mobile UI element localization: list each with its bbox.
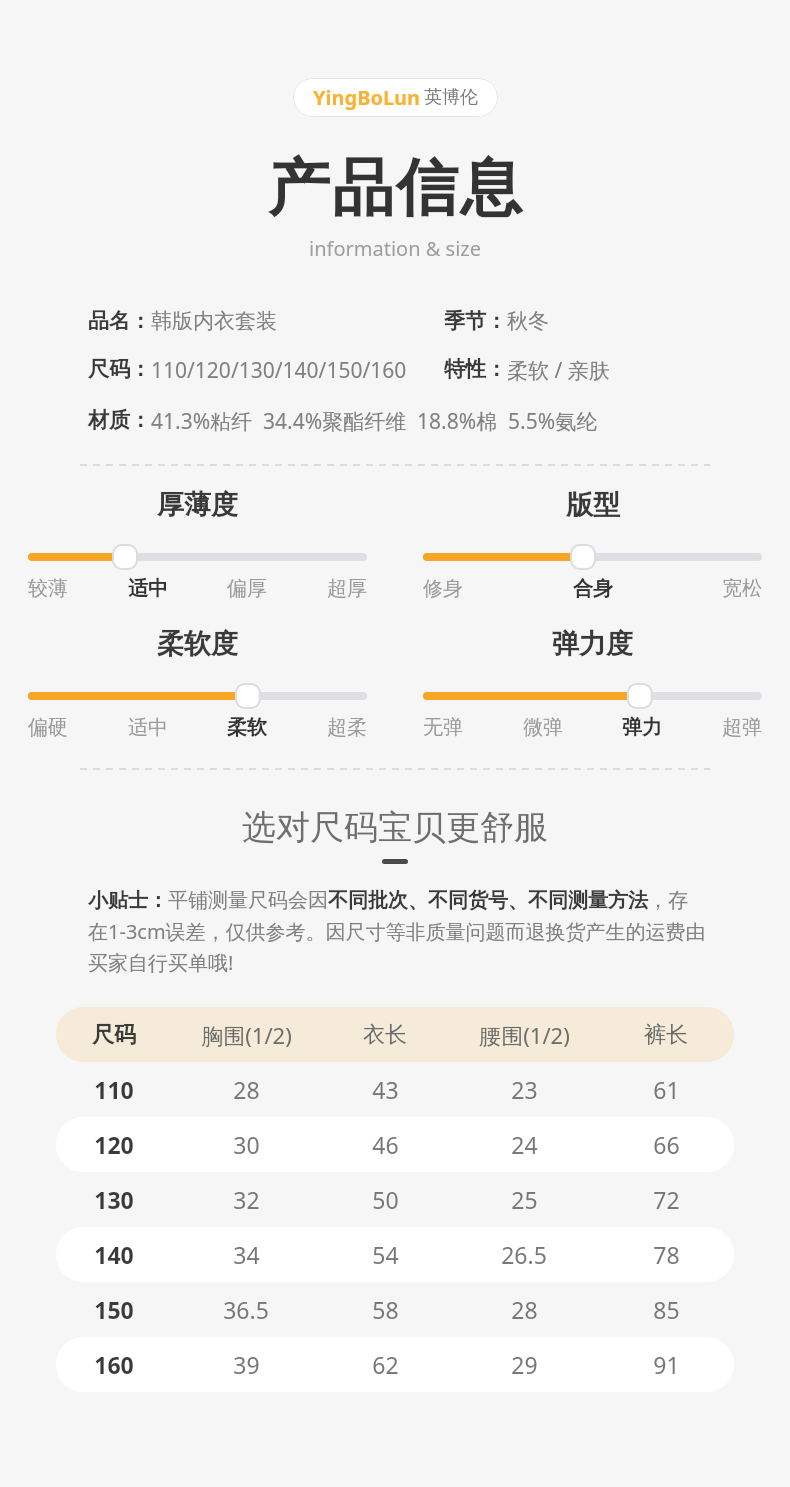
button[interactable]: 150 [56,1282,734,1337]
staticText: 偏硬 [28,715,68,740]
staticText: 54 [372,1239,399,1270]
staticText: 产品信息 [267,149,523,227]
staticText: 130 [94,1184,134,1215]
staticText: 柔软 / 亲肤 [507,356,610,385]
staticText: 韩版内衣套装 [151,308,277,334]
button[interactable]: 120 [56,1117,734,1172]
staticText: 58 [372,1294,399,1325]
staticText: 110 [94,1074,134,1105]
button[interactable]: 160 [56,1337,734,1392]
button[interactable]: 140 [56,1227,734,1282]
staticText: 140 [94,1239,134,1270]
staticText: 弹力 [622,715,662,740]
staticText: 46 [372,1129,399,1160]
staticText: 特性： [444,356,507,382]
staticText: 34 [233,1239,260,1270]
staticText: 超弹 [722,715,762,740]
staticText: 选对尺码宝贝更舒服 [242,806,548,849]
button[interactable]: 柔软度 [28,683,367,709]
staticText: 72 [653,1184,680,1215]
staticText: 120 [94,1129,134,1160]
staticText: 43 [372,1074,399,1105]
staticText: 超厚 [327,576,367,601]
staticText: 适中 [128,715,168,740]
staticText: 26.5 [501,1239,547,1270]
staticText: 小贴士：平铺测量尺码会因不同批次、不同货号、不同测量方法，存在1-3cm误差，仅… [88,888,706,975]
staticText: 24 [511,1129,538,1160]
staticText: 柔软 [227,715,267,740]
staticText: 尺码 [92,1021,136,1049]
staticText: 柔软度 [157,627,238,661]
staticText: 腰围(1/2) [479,1020,570,1050]
staticText: information & size [309,235,481,262]
staticText: 修身 [423,576,463,601]
staticText: 秋冬 [507,308,549,334]
staticText: 弹力度 [552,627,633,661]
staticText: 裤长 [644,1021,688,1049]
button[interactable]: YingBoLun [293,78,498,117]
staticText: 厚薄度 [157,488,238,522]
staticText: 无弹 [423,715,463,740]
staticText: 30 [233,1129,260,1160]
staticText: 材质： [88,407,151,433]
staticText: 78 [653,1239,680,1270]
staticText: 微弹 [523,715,563,740]
staticText: 28 [511,1294,538,1325]
staticText: 英博伦 [424,86,478,109]
staticText: 62 [372,1349,399,1380]
staticText: 150 [94,1294,134,1325]
staticText: 尺码： [88,356,151,382]
staticText: 110/120/130/140/150/160 [151,356,407,385]
button[interactable]: 130 [56,1172,734,1227]
staticText: 28 [233,1074,260,1105]
staticText: 85 [653,1294,680,1325]
staticText: 品名： [88,308,151,334]
staticText: 41.3%粘纤 34.4%聚酯纤维 18.8%棉 5.5%氨纶 [151,407,598,436]
staticText: 25 [511,1184,538,1215]
button[interactable]: 弹力度 [423,683,762,709]
staticText: 衣长 [363,1021,407,1049]
staticText: 61 [653,1074,680,1105]
staticText: 23 [511,1074,538,1105]
staticText: 适中 [128,576,168,601]
staticText: 版型 [566,488,620,522]
staticText: 32 [233,1184,260,1215]
staticText: 偏厚 [227,576,267,601]
staticText: 超柔 [327,715,367,740]
button[interactable]: 版型 [423,544,762,570]
staticText: 宽松 [722,576,762,601]
button[interactable]: 110 [56,1062,734,1117]
staticText: 合身 [573,576,613,601]
staticText: 29 [511,1349,538,1380]
staticText: 季节： [444,308,507,334]
staticText: 91 [653,1349,680,1380]
staticText: 36.5 [223,1294,269,1325]
staticText: 胸围(1/2) [201,1020,292,1050]
button[interactable]: 厚薄度 [28,544,367,570]
staticText: 39 [233,1349,260,1380]
staticText: 66 [653,1129,680,1160]
staticText: 50 [372,1184,399,1215]
staticText: 较薄 [28,576,68,601]
staticText: 160 [94,1349,134,1380]
staticText: YingBoLun [313,84,421,111]
